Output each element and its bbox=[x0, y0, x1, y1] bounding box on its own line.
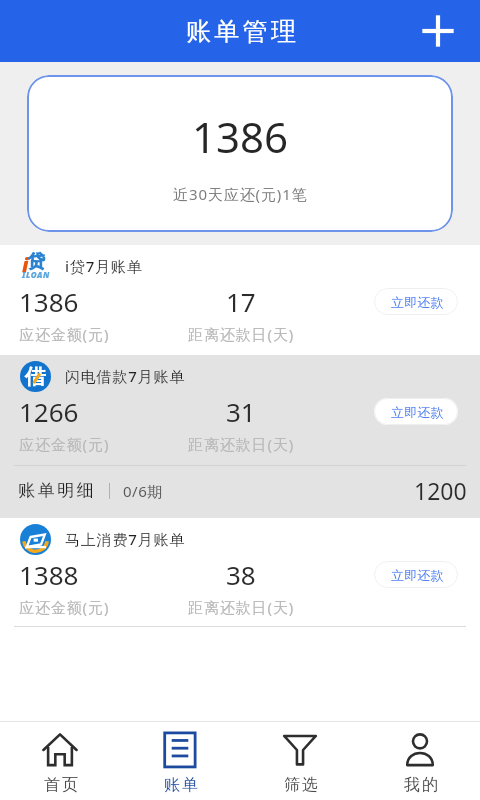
button[interactable]: 立即还款 bbox=[374, 561, 458, 588]
staticText: 贷 bbox=[28, 251, 45, 272]
button[interactable]: 1386 bbox=[27, 75, 453, 232]
staticText: 借 bbox=[25, 364, 46, 390]
staticText: ILOAN bbox=[22, 269, 50, 280]
staticText: 距离还款日(天) bbox=[188, 324, 295, 344]
button[interactable]: 借 bbox=[0, 355, 480, 465]
button[interactable]: 我的 bbox=[360, 722, 480, 800]
staticText: 我的 bbox=[403, 775, 439, 795]
staticText: 1388 bbox=[19, 557, 79, 592]
button[interactable]: 账单 bbox=[120, 722, 240, 800]
staticText: 立即还款 bbox=[391, 294, 444, 310]
button[interactable]: 立即还款 bbox=[374, 398, 458, 425]
staticText: 应还金额(元) bbox=[19, 597, 110, 617]
staticText: 马上消费7月账单 bbox=[65, 529, 185, 549]
staticText: 1200 bbox=[414, 475, 467, 506]
staticText: 近30天应还(元)1笔 bbox=[173, 184, 308, 204]
staticText: i贷7月账单 bbox=[65, 256, 143, 276]
staticText: 1266 bbox=[19, 394, 79, 429]
button[interactable]: 立即还款 bbox=[374, 288, 458, 315]
button[interactable]: i bbox=[0, 245, 480, 355]
staticText: 1386 bbox=[19, 284, 79, 319]
button[interactable]: 筛选 bbox=[240, 722, 360, 800]
staticText: i bbox=[22, 251, 29, 276]
button[interactable]: Add bbox=[414, 7, 462, 55]
staticText: 距离还款日(天) bbox=[188, 434, 295, 454]
button[interactable]: 首页 bbox=[0, 722, 120, 800]
staticText: 38 bbox=[226, 557, 256, 592]
staticText: 闪电借款7月账单 bbox=[65, 366, 185, 386]
staticText: 账单明细 bbox=[17, 480, 95, 501]
staticText: 立即还款 bbox=[391, 404, 444, 420]
staticText: 0/6期 bbox=[123, 481, 163, 501]
staticText: 账单 bbox=[163, 775, 199, 795]
staticText: 1386 bbox=[192, 108, 289, 165]
staticText: 应还金额(元) bbox=[19, 434, 110, 454]
staticText: 筛选 bbox=[283, 775, 319, 795]
staticText: 账单管理 bbox=[186, 16, 300, 47]
button[interactable]: 马上消费7月账单 bbox=[0, 518, 480, 628]
staticText: 距离还款日(天) bbox=[188, 597, 295, 617]
staticText: 17 bbox=[226, 284, 256, 319]
staticText: 首页 bbox=[43, 775, 79, 795]
staticText: 应还金额(元) bbox=[19, 324, 110, 344]
button[interactable]: 账单明细 bbox=[0, 466, 480, 518]
staticText: 31 bbox=[226, 394, 256, 429]
staticText: 立即还款 bbox=[391, 567, 444, 583]
